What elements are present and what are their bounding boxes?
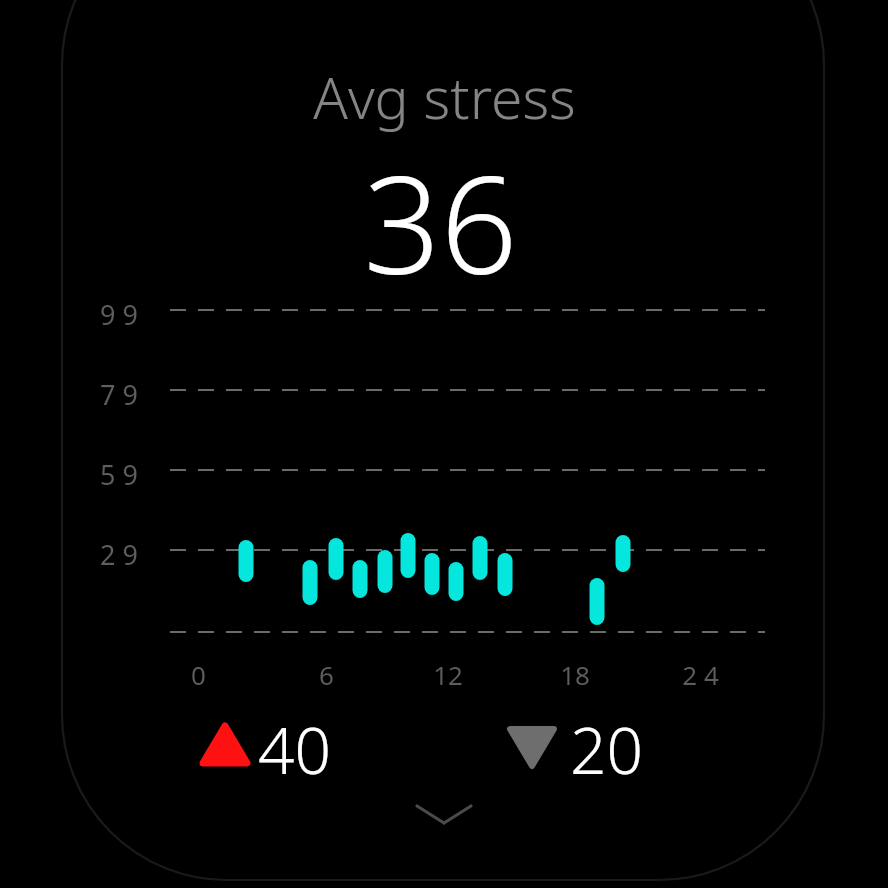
staticText: 40 [258, 706, 332, 786]
staticText: 5 9 [78, 456, 138, 496]
staticText: 9 9 [78, 296, 138, 336]
staticText: 20 [570, 706, 644, 786]
staticText: 12 [433, 657, 463, 692]
button[interactable]: 20 [502, 706, 652, 786]
staticText: 36 [363, 130, 518, 314]
staticText: 6 [319, 657, 334, 692]
staticText: Avg stress [313, 58, 576, 136]
staticText: 0 [191, 657, 206, 692]
staticText: 18 [560, 657, 590, 692]
button[interactable]: 40 [195, 706, 345, 786]
button[interactable]: Scroll down [404, 792, 484, 842]
staticText: 2 4 [682, 657, 719, 692]
staticText: 7 9 [78, 376, 138, 416]
staticText: 2 9 [78, 536, 138, 576]
